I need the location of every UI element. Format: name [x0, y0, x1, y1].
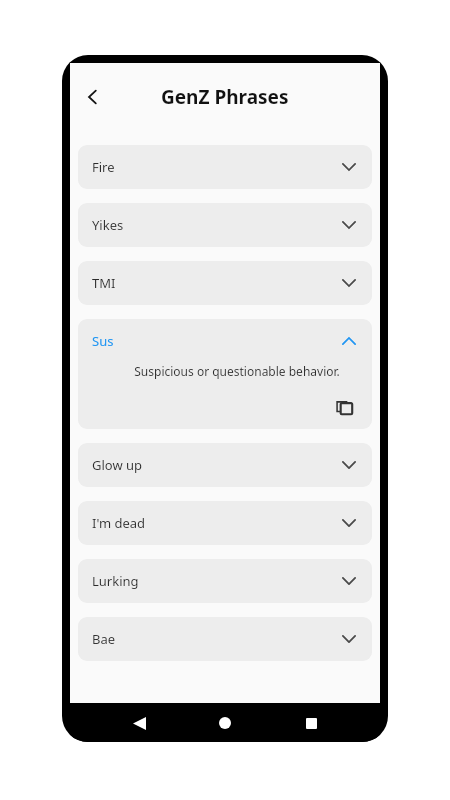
button[interactable]: Sus — [78, 319, 372, 429]
staticText: Suspicious or questionable behavior. — [124, 363, 350, 379]
staticText: Sus — [92, 332, 114, 350]
button[interactable]: Yikes — [78, 203, 372, 247]
button[interactable]: Back — [122, 706, 156, 740]
button[interactable]: Bae — [78, 617, 372, 661]
button[interactable]: Glow up — [78, 443, 372, 487]
staticText: Bae — [92, 630, 116, 648]
button[interactable]: Lurking — [78, 559, 372, 603]
staticText: I'm dead — [92, 514, 146, 532]
staticText: TMI — [92, 274, 116, 292]
button[interactable]: TMI — [78, 261, 372, 305]
button[interactable]: Home — [208, 706, 242, 740]
staticText: Fire — [92, 158, 115, 176]
button[interactable]: Back — [76, 80, 110, 114]
button[interactable]: Copy — [332, 393, 358, 419]
staticText: Yikes — [92, 216, 124, 234]
button[interactable]: I'm dead — [78, 501, 372, 545]
button[interactable]: Fire — [78, 145, 372, 189]
staticText: Lurking — [92, 572, 139, 590]
staticText: Glow up — [92, 456, 143, 474]
staticText: GenZ Phrases — [161, 84, 289, 110]
button[interactable]: Recents — [294, 706, 328, 740]
